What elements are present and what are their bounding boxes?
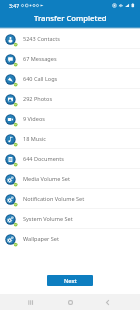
- staticText: Notification Volume Set: [23, 195, 85, 203]
- staticText: System Volume Set: [23, 215, 73, 223]
- button[interactable]: 18 Music: [0, 129, 140, 149]
- staticText: 292 Photos: [23, 95, 53, 103]
- button[interactable]: Notification Volume Set: [0, 189, 140, 209]
- button[interactable]: 640 Call Logs: [0, 69, 140, 89]
- button[interactable]: Next: [47, 275, 93, 286]
- button[interactable]: Back: [99, 294, 116, 310]
- staticText: 67 Messages: [23, 55, 57, 63]
- staticText: Media Volume Set: [23, 175, 70, 183]
- staticText: Wallpaper Set: [23, 235, 59, 243]
- staticText: Transfer Completed: [34, 13, 107, 23]
- button[interactable]: Wallpaper Set: [0, 229, 140, 249]
- button[interactable]: Home: [62, 294, 79, 310]
- staticText: 9 Videos: [23, 115, 45, 123]
- button[interactable]: 67 Messages: [0, 49, 140, 69]
- button[interactable]: 5243 Contacts: [0, 29, 140, 49]
- button[interactable]: Recents: [22, 294, 39, 310]
- button[interactable]: Media Volume Set: [0, 169, 140, 189]
- button[interactable]: 9 Videos: [0, 109, 140, 129]
- staticText: 5243 Contacts: [23, 35, 60, 43]
- staticText: 640 Call Logs: [23, 75, 58, 83]
- staticText: Next: [64, 277, 77, 285]
- staticText: 644 Documents: [23, 155, 64, 163]
- button[interactable]: 292 Photos: [0, 89, 140, 109]
- staticText: 3:47: [9, 2, 20, 9]
- button[interactable]: 644 Documents: [0, 149, 140, 169]
- button[interactable]: System Volume Set: [0, 209, 140, 229]
- staticText: 18 Music: [23, 135, 46, 143]
